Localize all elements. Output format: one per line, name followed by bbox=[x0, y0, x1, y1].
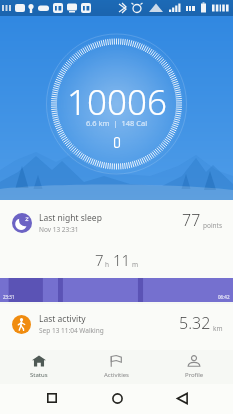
button[interactable]: Last night sleep bbox=[0, 200, 233, 302]
staticText: 6.6 km | 148 Cal bbox=[86, 118, 148, 128]
button[interactable]: Activities bbox=[77, 350, 155, 384]
staticText: Last activity bbox=[39, 313, 86, 325]
staticText: m bbox=[132, 260, 139, 269]
button[interactable]: Back bbox=[172, 388, 192, 408]
staticText: h bbox=[105, 260, 110, 269]
button[interactable]: Profile bbox=[155, 350, 233, 384]
staticText: 7 bbox=[95, 250, 104, 270]
button[interactable]: Recent apps bbox=[42, 388, 62, 408]
button[interactable]: Home bbox=[107, 388, 127, 408]
staticText: 06:42 bbox=[218, 294, 230, 300]
other: Profile bbox=[187, 355, 201, 367]
staticText: 23:31 bbox=[3, 294, 15, 300]
staticText: Status bbox=[30, 371, 48, 379]
staticText: points bbox=[203, 221, 223, 230]
staticText: Profile bbox=[185, 371, 204, 379]
staticText: Activities bbox=[104, 371, 129, 379]
staticText: Last night sleep bbox=[39, 212, 102, 224]
other: Status bbox=[32, 355, 46, 367]
staticText: Nov 13 23:31 bbox=[39, 225, 79, 234]
button[interactable]: Status bbox=[0, 350, 77, 384]
staticText: 11 bbox=[113, 250, 131, 270]
staticText: 5.32 bbox=[179, 312, 211, 334]
staticText: Sep 13 11:04 Walking bbox=[39, 326, 104, 335]
button[interactable]: Last activity bbox=[0, 304, 233, 350]
staticText: km bbox=[213, 324, 223, 333]
staticText: 77 bbox=[182, 209, 201, 231]
other: Activities bbox=[109, 355, 123, 367]
staticText: 10006 bbox=[67, 78, 167, 126]
